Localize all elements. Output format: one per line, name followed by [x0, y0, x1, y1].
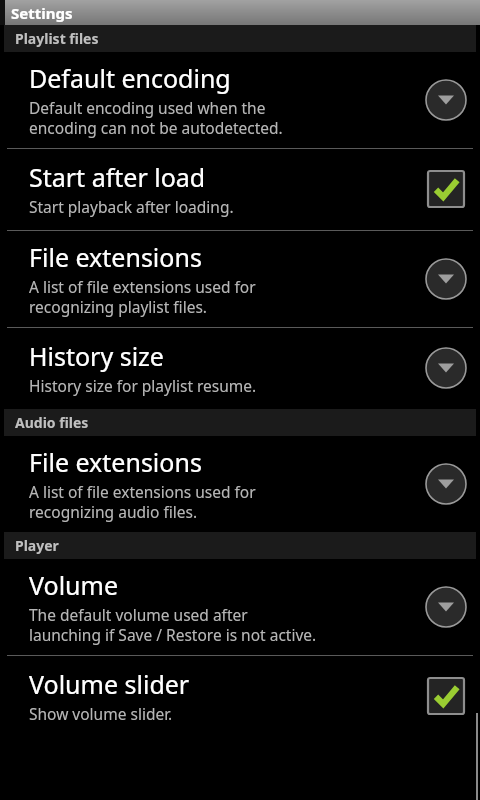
staticText: Start after load [29, 160, 206, 194]
staticText: Audio files [15, 413, 89, 432]
button[interactable]: Toggle setting [420, 163, 472, 215]
button[interactable]: Open options [420, 74, 472, 126]
staticText: Default encoding used when the encoding … [29, 97, 283, 139]
button[interactable]: File extensions [0, 231, 480, 327]
button[interactable]: Toggle setting [420, 670, 472, 722]
staticText: Default encoding [29, 61, 231, 95]
staticText: File extensions [29, 240, 202, 274]
button[interactable]: History size [0, 328, 480, 409]
button[interactable]: Open options [420, 581, 472, 633]
staticText: Volume slider [29, 667, 190, 701]
button[interactable]: Volume slider [0, 656, 480, 737]
button[interactable]: Open options [420, 458, 472, 510]
staticText: History size for playlist resume. [29, 375, 257, 396]
staticText: History size [29, 339, 164, 373]
button[interactable]: Start after load [0, 149, 480, 230]
staticText: Playlist files [15, 29, 99, 48]
button[interactable]: Open options [420, 253, 472, 305]
button[interactable]: Open options [420, 342, 472, 394]
staticText: Settings [11, 3, 73, 23]
staticText: Volume [29, 568, 119, 602]
staticText: A list of file extensions used for recog… [29, 276, 256, 318]
staticText: The default volume used after launching … [29, 604, 317, 646]
button[interactable]: File extensions [0, 436, 480, 532]
button[interactable]: Default encoding [0, 52, 480, 148]
staticText: Player [15, 536, 59, 555]
staticText: Start playback after loading. [29, 196, 234, 217]
staticText: File extensions [29, 445, 202, 479]
staticText: A list of file extensions used for recog… [29, 481, 256, 523]
button[interactable]: Volume [0, 559, 480, 655]
staticText: Show volume slider. [29, 703, 173, 724]
